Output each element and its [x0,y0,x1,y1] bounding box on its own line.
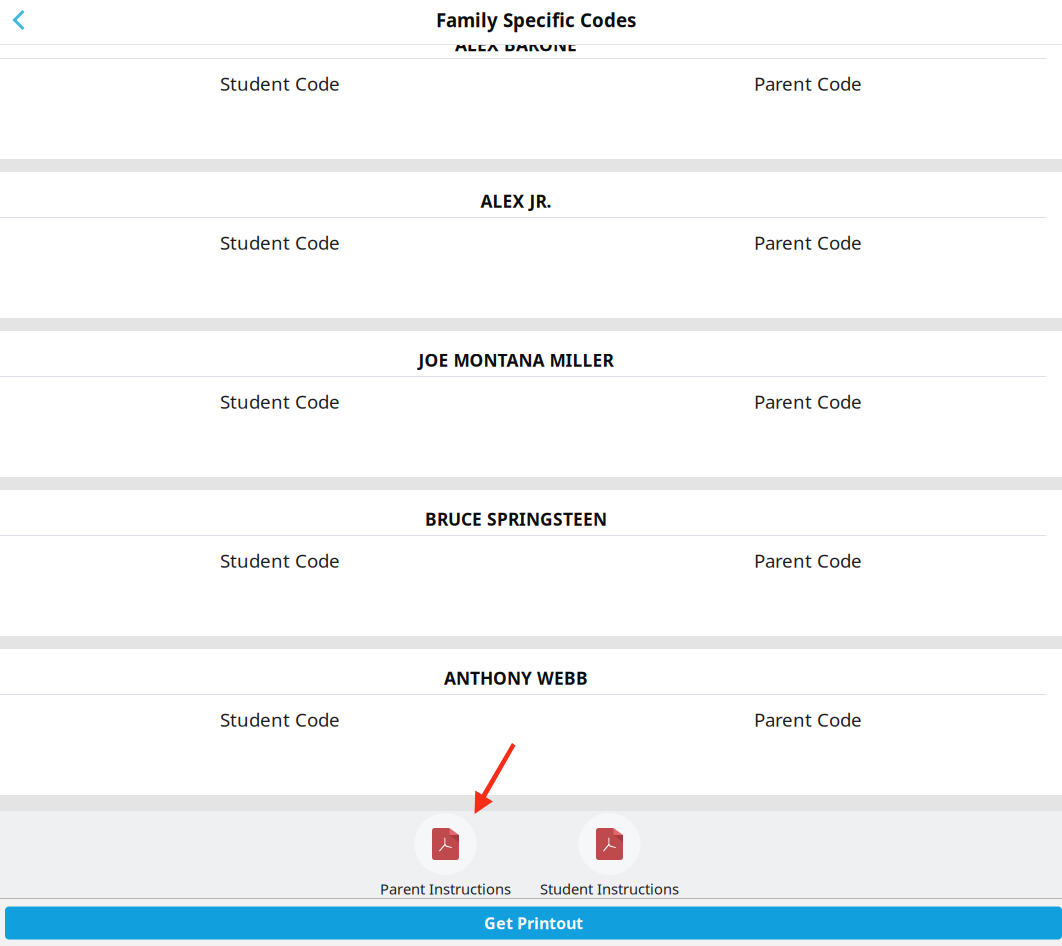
staticText: ALEX JR. [480,189,551,212]
staticText: Parent Code [754,71,862,96]
staticText: ALEX BARONE [455,33,577,56]
staticText: JOE MONTANA MILLER [418,348,613,371]
staticText: Student Instructions [540,879,679,898]
staticText: Student Code [220,548,340,573]
button[interactable]: Get Printout [5,906,1062,939]
staticText: Student Code [220,230,340,255]
button[interactable]: Back [0,0,44,44]
button[interactable]: Student Instructions [540,813,679,898]
staticText: Student Code [220,389,340,414]
staticText: Parent Code [754,707,862,732]
staticText: Parent Instructions [380,879,511,898]
button[interactable]: Parent Instructions [380,813,511,898]
staticText: Student Code [220,71,340,96]
staticText: Get Printout [484,912,583,934]
staticText: Parent Code [754,548,862,573]
staticText: Parent Code [754,389,862,414]
staticText: Student Code [220,707,340,732]
staticText: BRUCE SPRINGSTEEN [425,507,607,530]
staticText: Parent Code [754,230,862,255]
staticText: Family Specific Codes [436,8,636,32]
staticText: ANTHONY WEBB [444,666,588,689]
